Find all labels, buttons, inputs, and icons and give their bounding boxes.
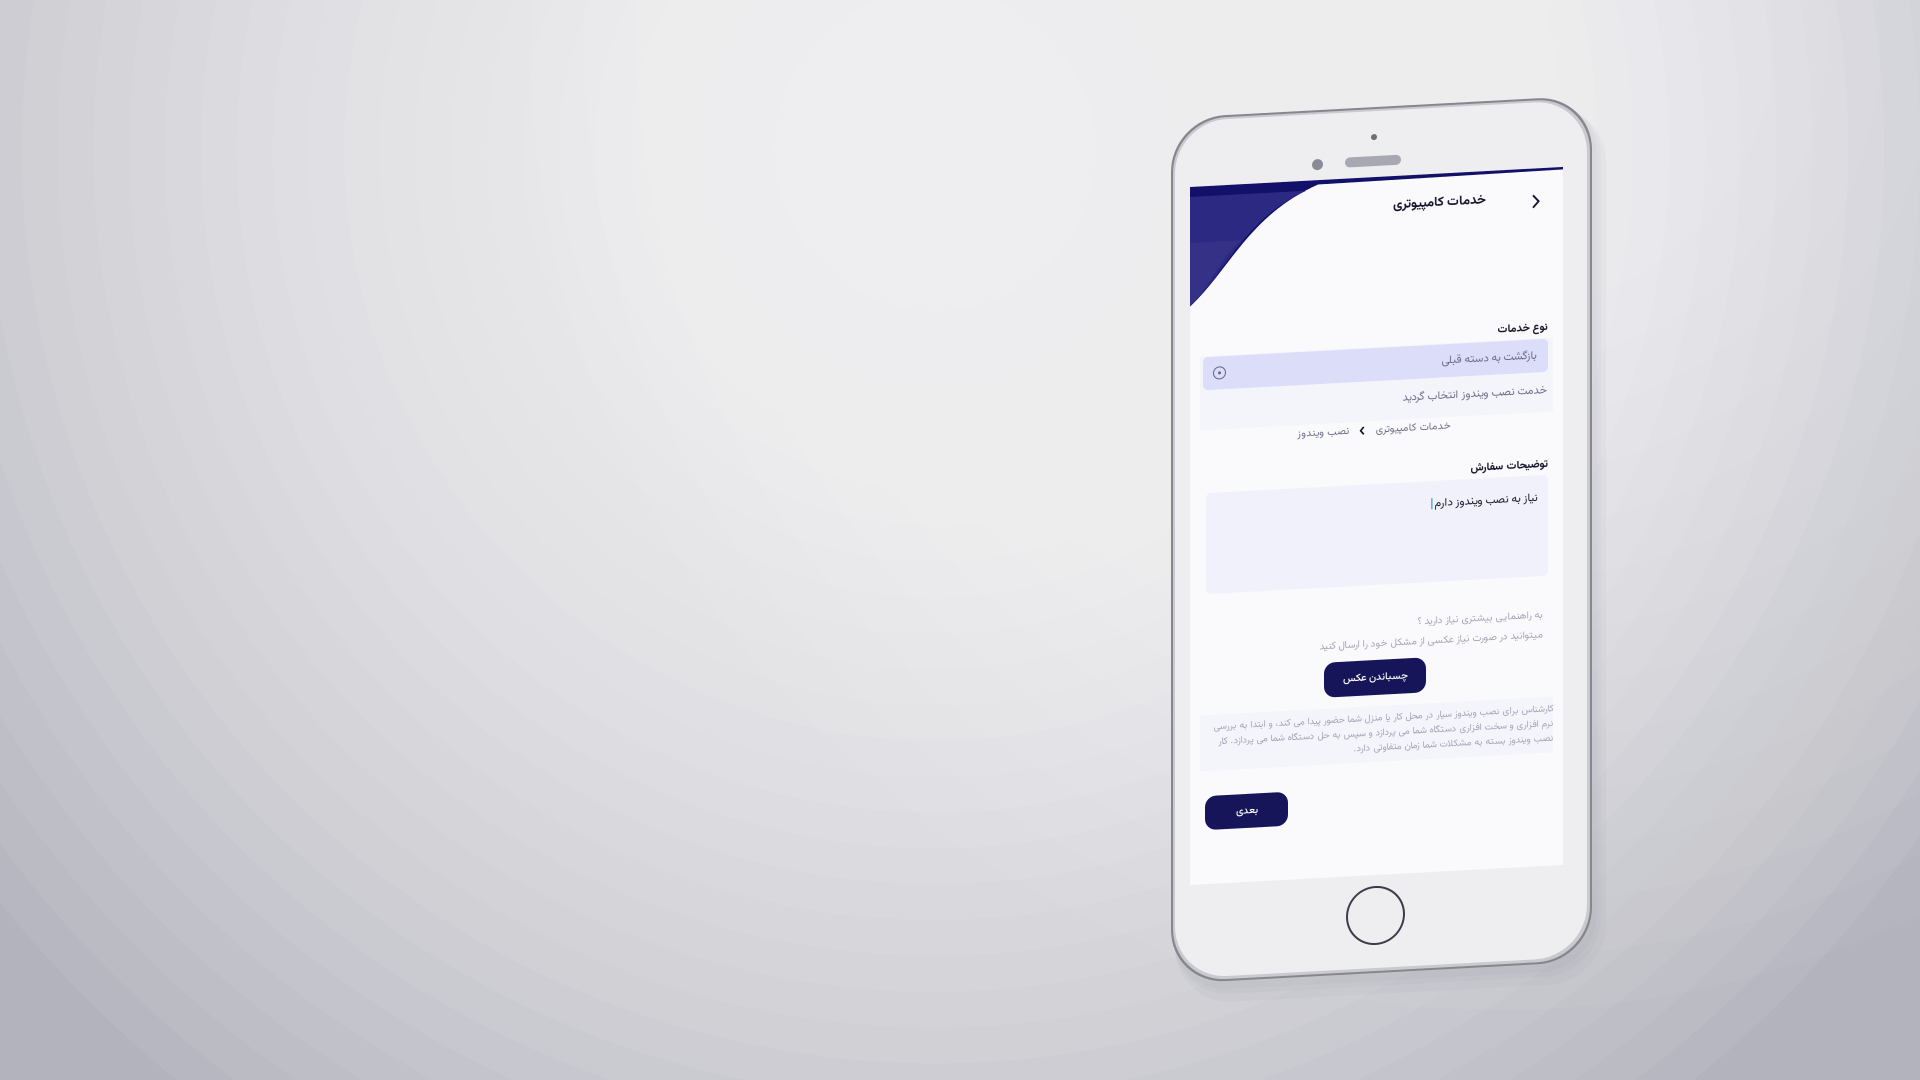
staticText: نوع خدمات bbox=[1497, 339, 1547, 356]
button[interactable]: بعدی bbox=[1205, 798, 1288, 832]
staticText: بعدی bbox=[1235, 807, 1257, 823]
staticText: به راهنمایی بیشتری نیاز دارید ؟ bbox=[1417, 627, 1542, 643]
staticText: خدمات کامپیوتری bbox=[1375, 433, 1450, 449]
staticText: نصب ویندوز bbox=[1297, 433, 1349, 449]
button[interactable]: چسباندن عکس bbox=[1324, 671, 1426, 706]
button[interactable]: Back bbox=[1521, 206, 1551, 236]
staticText: خدمات کامپیوتری bbox=[1392, 207, 1485, 227]
staticText: چسباندن عکس bbox=[1342, 680, 1407, 697]
staticText: کارشناس برای نصب ویندوز سیار در محل کار … bbox=[1213, 722, 1553, 766]
staticText: بازگشت به دسته قبلی bbox=[1441, 367, 1536, 384]
staticText: خدمت نصب ویندوز انتخاب گردید bbox=[1402, 402, 1547, 419]
staticText: نیاز به نصب ویندوز دارم bbox=[1434, 509, 1537, 526]
staticText: میتوانید در صورت نیاز عکسی از مشکل خود ر… bbox=[1319, 647, 1542, 663]
button[interactable]: بازگشت به دسته قبلی bbox=[1203, 359, 1548, 392]
